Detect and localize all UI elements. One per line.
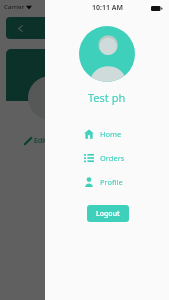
- button[interactable]: Orders: [45, 151, 169, 165]
- staticText: Orders: [100, 153, 125, 163]
- button[interactable]: Home: [45, 127, 169, 141]
- staticText: Carrier: [4, 3, 24, 11]
- staticText: 10:11 AM: [92, 3, 123, 13]
- staticText: Edit: [34, 136, 47, 146]
- staticText: Profile: [100, 177, 123, 187]
- staticText: Logout: [96, 209, 120, 219]
- other: Back: [16, 24, 25, 33]
- staticText: Home: [100, 129, 122, 139]
- button[interactable]: Logout: [87, 205, 129, 222]
- staticText: Test ph: [88, 90, 126, 105]
- button[interactable]: Profile: [45, 175, 169, 189]
